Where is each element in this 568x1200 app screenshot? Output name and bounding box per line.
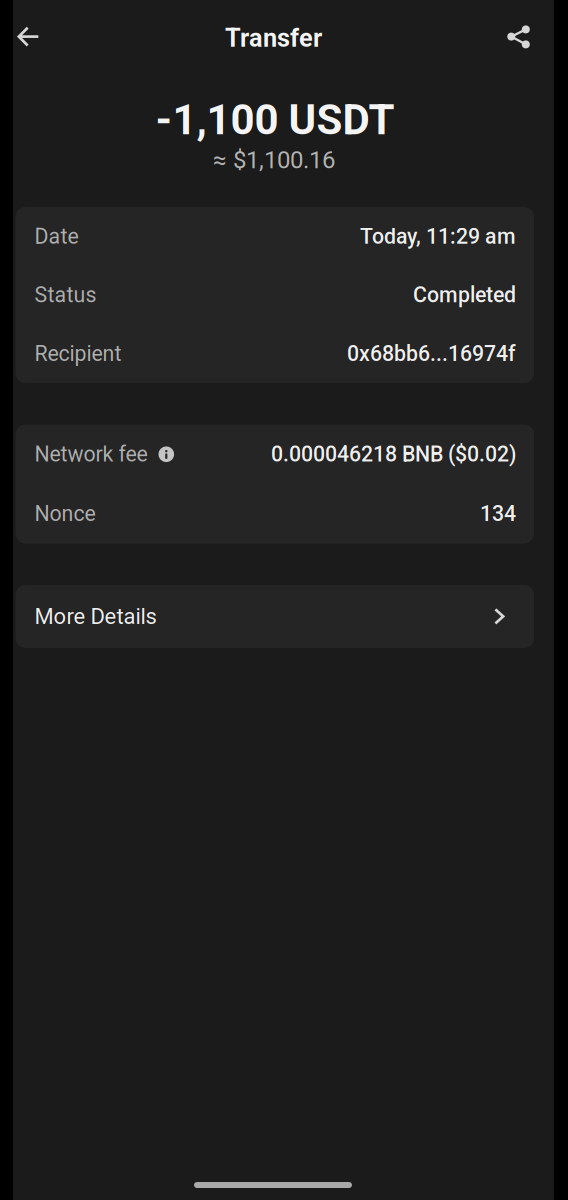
button[interactable]: Back <box>7 15 51 59</box>
button[interactable]: Status <box>15 266 534 324</box>
staticText: 134 <box>480 501 516 526</box>
button[interactable]: Recipient <box>15 324 534 383</box>
button[interactable]: Share <box>496 15 540 59</box>
staticText: More Details <box>34 604 156 629</box>
staticText: 0.000046218 BNB ($0.02) <box>271 442 516 467</box>
button[interactable]: Nonce <box>15 484 534 543</box>
staticText: Date <box>34 224 78 249</box>
staticText: Status <box>34 283 96 308</box>
button[interactable]: Network fee <box>15 424 534 484</box>
staticText: Transfer <box>225 23 322 53</box>
staticText: Today, 11:29 am <box>360 224 516 249</box>
staticText: -1,100 USDT <box>155 95 394 145</box>
staticText: Network fee <box>34 442 147 467</box>
staticText: Nonce <box>34 501 95 526</box>
staticText: 0x68bb6...16974f <box>347 341 516 366</box>
staticText: Completed <box>413 283 516 308</box>
staticText: ≈ $1,100.16 <box>213 146 335 174</box>
button[interactable]: Date <box>15 207 534 266</box>
staticText: Recipient <box>34 341 121 366</box>
button[interactable]: More Details <box>15 585 534 648</box>
